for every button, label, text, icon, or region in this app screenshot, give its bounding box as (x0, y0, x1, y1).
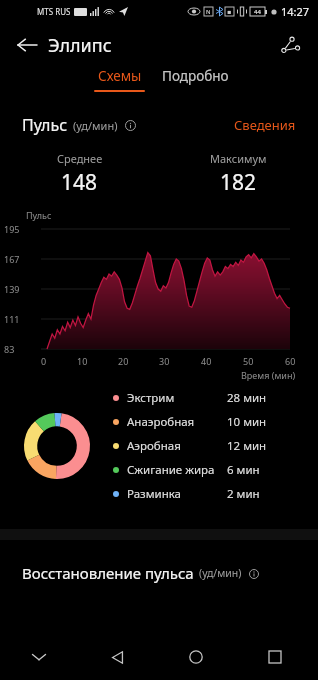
staticText: 182 (220, 168, 257, 197)
button[interactable]: Сжигание жира (113, 458, 318, 482)
staticText: (уд/мин) (199, 566, 242, 580)
staticText: Сведения (234, 116, 296, 134)
button[interactable]: Разминка (113, 482, 318, 506)
button[interactable]: Анаэробная (113, 410, 318, 434)
staticText: 2 мин (227, 486, 260, 502)
staticText: 6 мин (227, 462, 260, 478)
staticText: Подробно (162, 67, 229, 85)
staticText: Сжигание жира (127, 462, 227, 478)
staticText: 148 (61, 168, 98, 197)
staticText: 139 (4, 283, 20, 295)
staticText: 14:27 (281, 4, 310, 19)
staticText: 28 мин (227, 390, 267, 406)
staticText: Эллипс (48, 33, 112, 58)
button[interactable]: Подробно (159, 67, 232, 85)
button[interactable]: Сведения (232, 113, 298, 137)
staticText: 44 (254, 8, 261, 16)
staticText: Максимум (210, 151, 267, 166)
button[interactable]: Back (8, 26, 46, 64)
staticText: 167 (4, 253, 20, 265)
button[interactable]: Info about pulse recovery (246, 566, 261, 581)
button[interactable]: Hide keyboard (18, 636, 60, 678)
staticText: Аэробная (127, 438, 227, 454)
staticText: Экстрим (127, 390, 227, 406)
staticText: 83 (4, 343, 15, 355)
staticText: 195 (4, 223, 20, 235)
staticText: (уд/мин) (73, 118, 118, 133)
staticText: Пульс (22, 114, 68, 136)
button[interactable]: Аэробная (113, 434, 318, 458)
staticText: Среднее (57, 151, 103, 166)
staticText: 12 мин (227, 438, 267, 454)
staticText: Восстановление пульса (22, 563, 194, 583)
button[interactable]: Экстрим (113, 386, 318, 410)
button[interactable]: Share (271, 26, 309, 64)
staticText: ▪ (227, 8, 232, 15)
staticText: Схемы (98, 67, 142, 85)
button[interactable]: Home (175, 636, 217, 678)
staticText: 50 (243, 355, 254, 367)
button[interactable]: Схемы (91, 67, 148, 92)
staticText: Пульс (26, 209, 52, 221)
staticText: 30 (159, 355, 170, 367)
staticText: Время (мин) (241, 369, 296, 381)
button[interactable]: Back (96, 636, 138, 678)
staticText: Разминка (127, 486, 227, 502)
staticText: 111 (4, 313, 20, 325)
staticText: MTS RUS (37, 6, 71, 17)
staticText: 10 (77, 355, 88, 367)
staticText: 10 мин (227, 414, 267, 430)
staticText: 0 (41, 355, 47, 367)
staticText: 20 (118, 355, 129, 367)
staticText: Анаэробная (127, 414, 227, 430)
staticText: 60 (285, 355, 296, 367)
staticText: 40 (201, 355, 212, 367)
button[interactable]: Info about pulse (122, 117, 138, 133)
button[interactable]: Recent apps (254, 636, 296, 678)
staticText: N (206, 8, 211, 16)
